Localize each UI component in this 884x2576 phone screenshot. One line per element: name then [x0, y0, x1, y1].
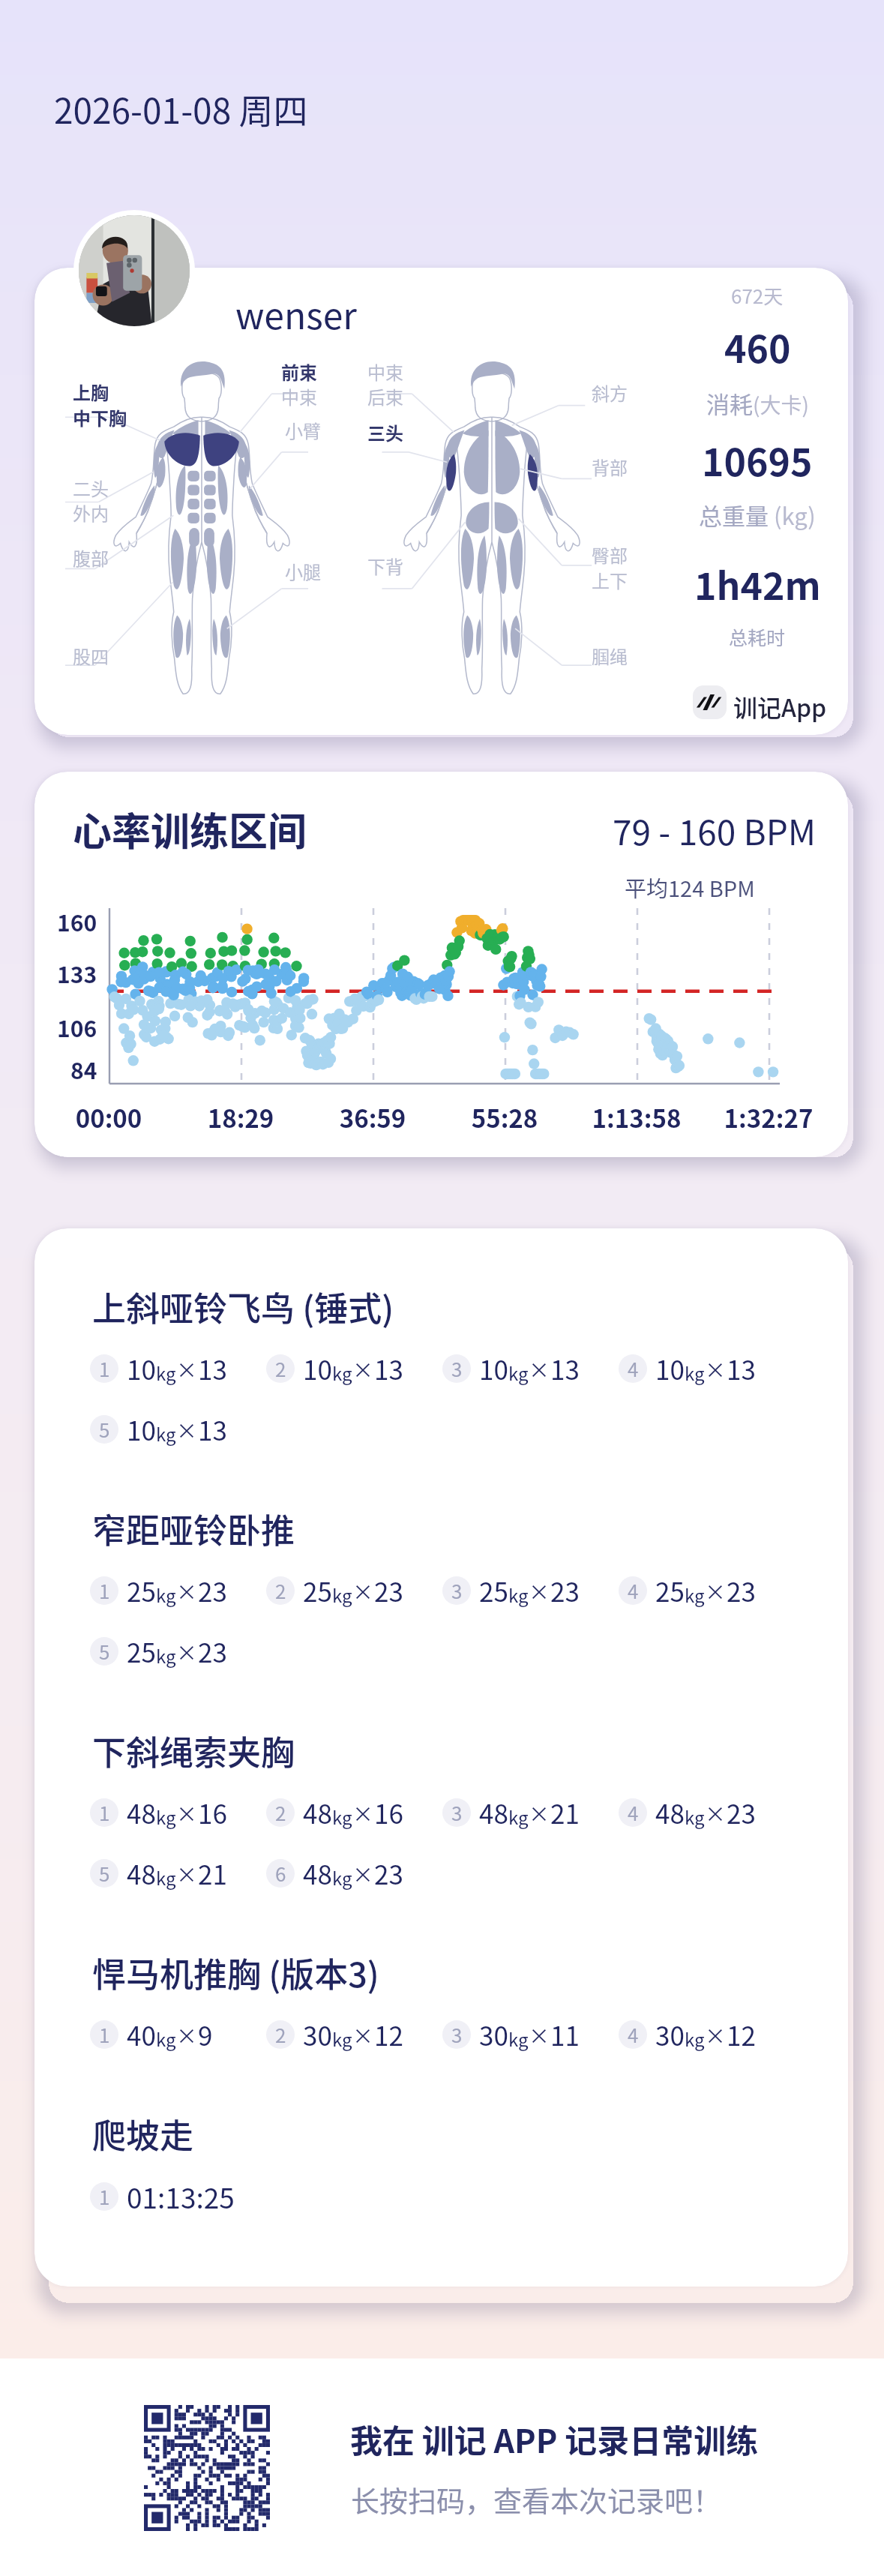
staticText: 133 — [57, 957, 97, 989]
staticText: × — [176, 2020, 198, 2051]
staticText: kg — [685, 1804, 705, 1830]
staticText: 2 — [275, 1354, 286, 1383]
button[interactable]: 心率训练区间 — [34, 772, 848, 1157]
staticText: 1:32:27 — [709, 1099, 829, 1135]
staticText: × — [352, 1354, 374, 1385]
staticText: 3 — [451, 1354, 463, 1383]
staticText: 9 — [198, 2015, 213, 2053]
staticText: 平均124 BPM — [625, 871, 755, 903]
staticText: 48 — [655, 1793, 685, 1831]
staticText: 40 — [127, 2015, 156, 2053]
staticText: kg — [685, 2026, 705, 2052]
staticText: 5 — [99, 1415, 110, 1444]
staticText: kg — [156, 1582, 176, 1608]
staticText: × — [176, 1576, 198, 1607]
staticText: 13 — [550, 1349, 580, 1387]
staticText: 10 — [655, 1349, 685, 1387]
staticText: 23 — [374, 1854, 403, 1892]
staticText: 斜方 — [592, 379, 628, 406]
staticText: 36:59 — [313, 1099, 433, 1135]
staticText: 23 — [374, 1571, 403, 1609]
staticText: 25 — [127, 1571, 156, 1609]
staticText: 13 — [198, 1349, 227, 1387]
staticText: 16 — [198, 1793, 227, 1831]
staticText: 中束 — [367, 358, 403, 385]
staticText: kg — [156, 1864, 176, 1891]
staticText: 23 — [198, 1632, 227, 1670]
staticText: kg — [332, 2026, 352, 2052]
staticText: 中下胸 — [73, 404, 127, 430]
staticText: 外内 — [73, 499, 109, 526]
staticText: 79 - 160 BPM — [613, 805, 817, 856]
staticText: 16 — [374, 1793, 403, 1831]
staticText: kg — [156, 1642, 176, 1669]
staticText: × — [529, 1798, 550, 1829]
staticText: 48 — [127, 1793, 156, 1831]
staticText: 25 — [127, 1632, 156, 1670]
staticText: kg — [508, 1804, 529, 1830]
staticText: 我在 训记 APP 记录日常训练 — [350, 2416, 759, 2462]
staticText: 三头 — [367, 419, 403, 445]
staticText: 窄距哑铃卧推 — [92, 1504, 295, 1553]
staticText: 48 — [303, 1793, 332, 1831]
staticText: 1 — [99, 1354, 110, 1383]
staticText: 臀部 — [592, 541, 628, 568]
staticText: 13 — [727, 1349, 756, 1387]
staticText: 心率训练区间 — [73, 801, 307, 857]
staticText: 11 — [550, 2015, 580, 2053]
staticText: 25 — [479, 1571, 508, 1609]
staticText: 消耗 — [706, 386, 753, 420]
staticText: 25 — [655, 1571, 685, 1609]
staticText: × — [529, 1576, 550, 1607]
staticText: × — [176, 1415, 198, 1446]
staticText: 10 — [127, 1410, 156, 1448]
staticText: 下斜绳索夹胸 — [92, 1726, 295, 1775]
button[interactable]: 上斜哑铃飞鸟 (锤式) — [34, 1228, 848, 2287]
staticText: (kg) — [774, 498, 816, 532]
staticText: 23 — [198, 1571, 227, 1609]
staticText: 5 — [99, 1859, 110, 1888]
staticText: 2 — [275, 2020, 286, 2049]
staticText: kg — [156, 1360, 176, 1386]
staticText: 10695 — [702, 433, 813, 487]
staticText: 10 — [479, 1349, 508, 1387]
staticText: × — [176, 1637, 198, 1668]
staticText: 84 — [70, 1053, 97, 1085]
staticText: 13 — [374, 1349, 403, 1387]
staticText: 6 — [275, 1859, 286, 1888]
staticText: × — [352, 1859, 374, 1890]
staticText: 4 — [628, 1354, 639, 1383]
staticText: 3 — [451, 2020, 463, 2049]
staticText: 106 — [57, 1011, 97, 1043]
staticText: × — [705, 1354, 727, 1385]
staticText: 1 — [99, 1798, 110, 1827]
button[interactable]: 训记 App — [693, 685, 727, 719]
staticText: 长按扫码，查看本次记录吧！ — [351, 2479, 722, 2520]
staticText: 1h42m — [694, 556, 821, 610]
staticText: 10 — [127, 1349, 156, 1387]
staticText: 12 — [727, 2015, 756, 2053]
staticText: 小腿 — [285, 558, 321, 584]
staticText: kg — [685, 1582, 705, 1608]
staticText: 13 — [198, 1410, 227, 1448]
staticText: 18:29 — [181, 1099, 301, 1135]
staticText: 30 — [303, 2015, 332, 2053]
staticText: kg — [156, 1804, 176, 1830]
staticText: kg — [332, 1864, 352, 1891]
staticText: 下背 — [367, 553, 403, 579]
staticText: 4 — [628, 1798, 639, 1827]
staticText: 2 — [275, 1798, 286, 1827]
button[interactable]: wenser — [34, 268, 848, 735]
staticText: × — [176, 1354, 198, 1385]
staticText: kg — [332, 1804, 352, 1830]
staticText: × — [705, 1798, 727, 1829]
staticText: kg — [332, 1582, 352, 1608]
staticText: 1:13:58 — [577, 1099, 697, 1135]
staticText: 12 — [374, 2015, 403, 2053]
staticText: 上胸 — [73, 379, 109, 405]
staticText: × — [529, 2020, 550, 2051]
staticText: 55:28 — [445, 1099, 565, 1135]
staticText: 23 — [727, 1793, 756, 1831]
staticText: × — [352, 2020, 374, 2051]
staticText: 01:13:25 — [127, 2176, 235, 2217]
